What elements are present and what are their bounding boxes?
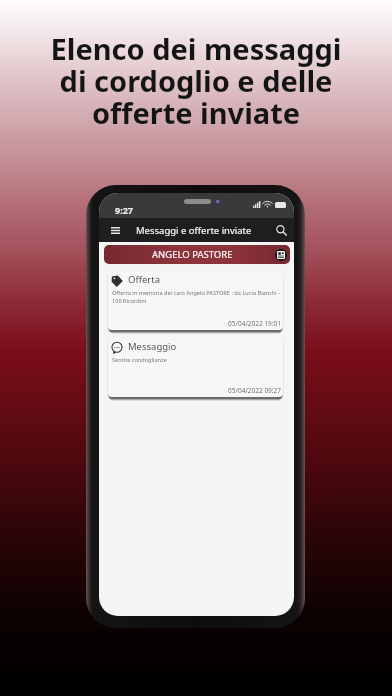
- staticText: Offerta: [128, 273, 160, 286]
- button[interactable]: Offerta: [108, 272, 283, 330]
- staticText: 05/04/2022 19:01: [112, 319, 281, 328]
- button[interactable]: Dettagli: [275, 249, 287, 261]
- button[interactable]: Messaggio: [108, 339, 283, 397]
- staticText: 05/04/2022 09:27: [112, 386, 281, 395]
- staticText: 9:27: [115, 204, 133, 216]
- button[interactable]: ANGELO PASTORE: [104, 245, 290, 264]
- staticText: Messaggio: [128, 340, 177, 353]
- staticText: ANGELO PASTORE: [152, 248, 233, 261]
- button[interactable]: Menu: [105, 220, 125, 240]
- staticText: Sentite condoglianze: [112, 356, 282, 364]
- staticText: Messaggi e offerte inviate: [136, 224, 252, 237]
- button[interactable]: Search: [271, 220, 291, 240]
- staticText: Offerta in memoria del caro Angelo PASTO…: [112, 289, 282, 305]
- staticText: Elenco dei messaggi di cordoglio e delle…: [0, 29, 392, 133]
